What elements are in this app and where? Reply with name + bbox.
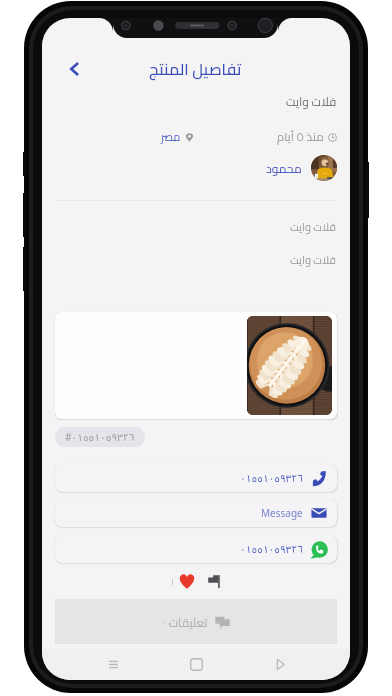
button[interactable]: Send message (55, 499, 337, 527)
staticText: ٠١٥٥١٠٥٩٣٢٦ (240, 539, 303, 560)
button[interactable]: Recent apps (100, 651, 126, 677)
staticText: Message (261, 506, 303, 520)
staticText: تفاصيل المنتج (149, 54, 242, 84)
button[interactable] (55, 312, 337, 419)
button[interactable]: تعليقات ٠ (55, 599, 337, 644)
staticText: فلات وايت (286, 90, 337, 112)
button[interactable]: Like (178, 572, 196, 590)
staticText: محمود (266, 157, 302, 179)
button[interactable]: Call phone (55, 464, 337, 492)
staticText: مصر (161, 127, 181, 148)
staticText: ١ (171, 573, 174, 590)
staticText: منذ ٥ أيام (277, 126, 324, 148)
staticText: تعليقات ٠ (163, 611, 208, 633)
staticText: فلات وايت (290, 217, 337, 238)
staticText: ٠١٥٥١٠٥٩٣٢٦ (240, 468, 303, 489)
button[interactable]: Home (183, 651, 209, 677)
button[interactable]: Report (207, 574, 222, 589)
button[interactable]: #٠١٥٥١٠٥٩٣٢٦ (55, 427, 145, 447)
button[interactable]: محمود (266, 155, 337, 181)
button[interactable]: WhatsApp (55, 535, 337, 563)
button[interactable]: Back (64, 58, 86, 80)
staticText: #٠١٥٥١٠٥٩٣٢٦ (65, 427, 135, 447)
staticText: فلات وايت (290, 250, 337, 271)
button[interactable]: Back (267, 651, 293, 677)
